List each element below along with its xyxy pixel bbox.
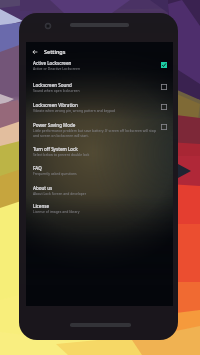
staticText: License of images and library [33, 209, 80, 214]
button[interactable]: Power Saving Mode [26, 122, 173, 142]
staticText: Sound when open lockscreen [33, 88, 80, 93]
staticText: Settings [44, 48, 66, 55]
staticText: Frequently asked questions [33, 171, 77, 176]
staticText: License [33, 203, 50, 209]
staticText: Turn off System Lock [33, 146, 78, 152]
button[interactable]: FAQ [26, 165, 173, 181]
staticText: Lockscreen Vibration [33, 102, 78, 108]
staticText: Active Lockscreen [33, 60, 72, 66]
button[interactable]: License [26, 203, 173, 219]
staticText: Select below to prevent double lock [33, 152, 90, 157]
staticText: Little performance problem but save batt… [33, 128, 157, 138]
staticText: FAQ [33, 165, 42, 171]
other: Back [31, 48, 39, 56]
staticText: About Lock Screen and developer [33, 191, 87, 196]
button[interactable]: About us [26, 185, 173, 201]
button[interactable]: Lockscreen Sound [26, 82, 173, 98]
button[interactable]: Lockscreen Vibration [26, 102, 173, 118]
staticText: Power Saving Mode [33, 122, 76, 128]
button[interactable]: Turn off System Lock [26, 146, 173, 162]
staticText: Active or Deactive Lockscreen [33, 66, 81, 71]
staticText: About us [33, 185, 53, 191]
staticText: Lockscreen Sound [33, 82, 72, 88]
staticText: Vibrate when wrong pin, wrong pattern an… [33, 108, 116, 113]
button[interactable]: Back [26, 42, 173, 61]
button[interactable]: Active Lockscreen [26, 60, 173, 76]
